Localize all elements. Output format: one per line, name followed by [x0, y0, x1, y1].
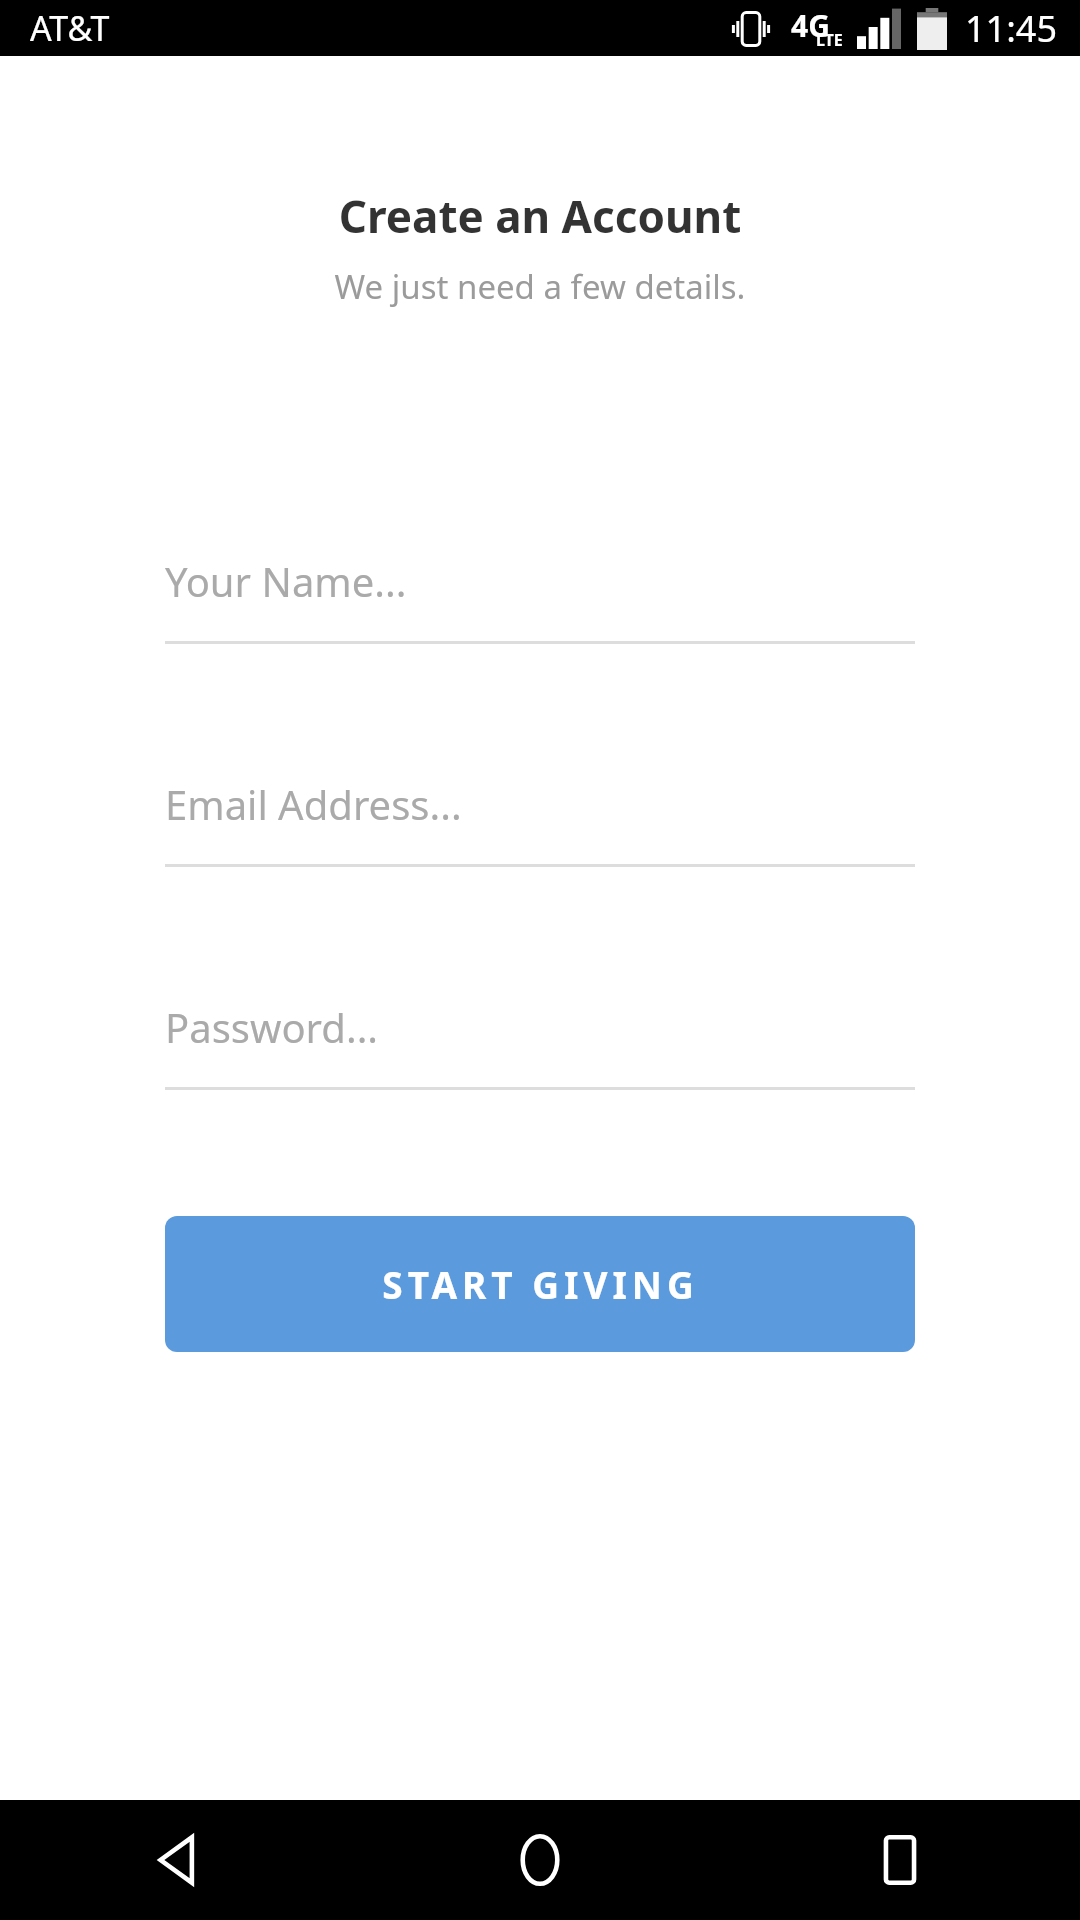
button[interactable]: Password...: [165, 967, 915, 1090]
staticText: We just need a few details.: [0, 264, 1080, 309]
staticText: Your Name...: [165, 554, 407, 608]
staticText: Create an Account: [0, 186, 1080, 246]
button[interactable]: Home: [360, 1800, 720, 1920]
button[interactable]: START GIVING: [165, 1216, 915, 1352]
staticText: LTE: [816, 29, 843, 51]
staticText: 4G: [791, 5, 830, 46]
staticText: AT&T: [30, 5, 110, 51]
button[interactable]: Your Name...: [165, 521, 915, 644]
staticText: Email Address...: [165, 777, 462, 831]
staticText: START GIVING: [382, 1259, 699, 1309]
button[interactable]: Email Address...: [165, 744, 915, 867]
button[interactable]: Back: [0, 1800, 360, 1920]
button[interactable]: Recent apps: [720, 1800, 1080, 1920]
staticText: 11:45: [965, 4, 1058, 53]
staticText: Password...: [165, 1000, 379, 1054]
